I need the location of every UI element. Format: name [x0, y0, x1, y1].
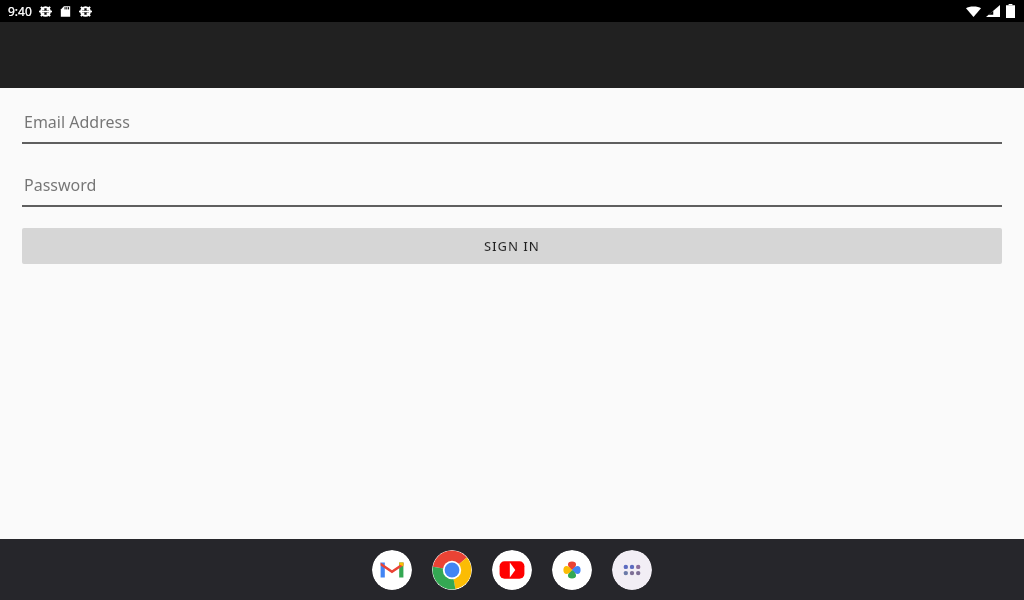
button[interactable]: Password	[22, 173, 1002, 207]
button[interactable]: Email Address	[22, 110, 1002, 144]
staticText: SIGN IN	[484, 237, 540, 255]
staticText: Password	[24, 174, 97, 196]
button[interactable]: All apps	[612, 550, 652, 590]
button[interactable]: SIGN IN	[22, 228, 1002, 264]
staticText: Email Address	[24, 111, 130, 133]
staticText: 9:40	[8, 3, 32, 19]
button[interactable]: Chrome	[432, 550, 472, 590]
button[interactable]: Gmail	[372, 550, 412, 590]
button[interactable]: Google Photos	[552, 550, 592, 590]
button[interactable]: YouTube	[492, 550, 532, 590]
